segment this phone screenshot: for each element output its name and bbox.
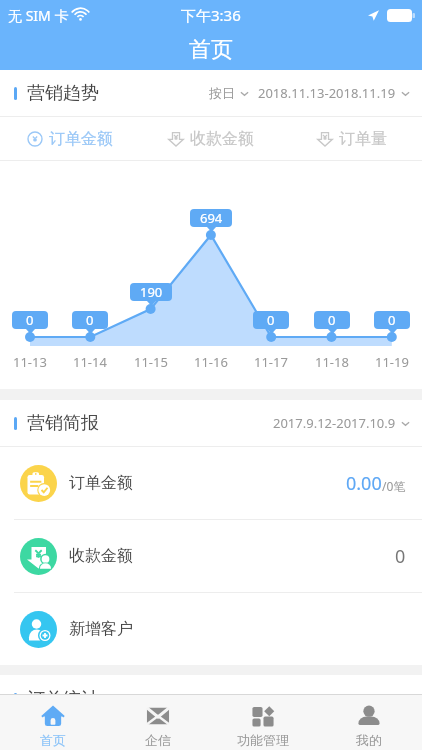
staticText: 11-14: [73, 353, 107, 371]
staticText: 11-17: [254, 353, 288, 371]
staticText: 0: [267, 311, 275, 329]
staticText: 0: [86, 311, 94, 329]
staticText: 按日: [209, 85, 235, 101]
staticText: 0: [328, 311, 336, 329]
staticText: 订单金额: [49, 129, 113, 149]
staticText: 我的: [356, 732, 382, 748]
staticText: 190: [140, 283, 163, 301]
button[interactable]: 企信: [105, 695, 210, 750]
staticText: 0.00: [346, 471, 382, 496]
button[interactable]: 2017.9.12-2017.10.9: [273, 414, 410, 432]
staticText: 0: [26, 311, 34, 329]
staticText: 2017.9.12-2017.10.9: [273, 414, 396, 432]
staticText: 11-19: [375, 353, 409, 371]
staticText: 订单量: [339, 129, 387, 149]
staticText: 0: [395, 544, 406, 569]
staticText: 收款金额: [190, 129, 254, 149]
staticText: 企信: [145, 732, 171, 748]
staticText: 11-13: [13, 353, 47, 371]
staticText: 11-16: [194, 353, 228, 371]
staticText: /0笔: [382, 478, 406, 494]
staticText: 694: [200, 209, 223, 227]
staticText: 订单金额: [69, 473, 133, 493]
button[interactable]: 功能管理: [210, 695, 316, 750]
button[interactable]: 新增客户: [0, 593, 422, 665]
staticText: 首页: [189, 36, 233, 64]
button[interactable]: 我的: [316, 695, 422, 750]
staticText: 下午3:36: [181, 5, 241, 25]
staticText: 2018.11.13-2018.11.19: [258, 84, 396, 102]
staticText: 11-15: [134, 353, 168, 371]
button[interactable]: 订单量: [281, 117, 422, 160]
staticText: 首页: [40, 732, 66, 748]
staticText: 订单统计: [27, 688, 99, 694]
button[interactable]: 收款金额: [0, 520, 422, 592]
staticText: 无 SIM 卡: [8, 6, 69, 25]
staticText: 新增客户: [69, 619, 133, 639]
staticText: 功能管理: [237, 732, 289, 748]
button[interactable]: 按日: [209, 84, 410, 102]
button[interactable]: 订单金额: [0, 447, 422, 519]
staticText: 营销趋势: [27, 82, 99, 105]
button[interactable]: 订单金额: [0, 117, 140, 160]
staticText: 11-18: [315, 353, 349, 371]
button[interactable]: 首页: [0, 695, 105, 750]
staticText: 收款金额: [69, 546, 133, 566]
staticText: 营销简报: [27, 412, 99, 435]
button[interactable]: 收款金额: [140, 117, 281, 160]
staticText: 0: [388, 311, 396, 329]
